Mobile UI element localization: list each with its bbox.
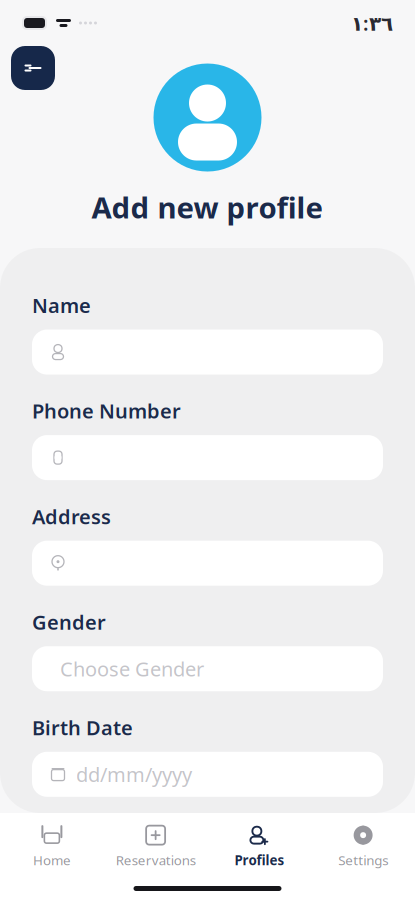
- button[interactable]: Reservations: [104, 823, 208, 871]
- staticText: Reservations: [116, 851, 196, 869]
- staticText: Address: [32, 503, 111, 530]
- staticText: Name: [32, 292, 91, 319]
- button[interactable]: Home: [0, 823, 104, 871]
- staticText: Settings: [338, 851, 388, 869]
- button[interactable]: Gender: [32, 646, 383, 691]
- button[interactable]: Phone Number: [32, 435, 383, 480]
- staticText: Choose Gender: [60, 655, 204, 682]
- staticText: ١:٣٦: [351, 10, 393, 36]
- staticText: Phone Number: [32, 398, 181, 424]
- staticText: dd/mm/yyyy: [76, 761, 192, 788]
- staticText: Profiles: [234, 851, 284, 869]
- button[interactable]: Profiles: [207, 823, 311, 871]
- staticText: Home: [33, 851, 71, 869]
- button[interactable]: Name: [32, 330, 383, 375]
- button[interactable]: Settings: [311, 823, 415, 871]
- staticText: Gender: [32, 609, 106, 635]
- staticText: Add new profile: [91, 187, 323, 226]
- button[interactable]: Back: [11, 46, 55, 90]
- staticText: Birth Date: [32, 714, 133, 741]
- button[interactable]: Birth Date: [32, 752, 383, 797]
- button[interactable]: Address: [32, 541, 383, 586]
